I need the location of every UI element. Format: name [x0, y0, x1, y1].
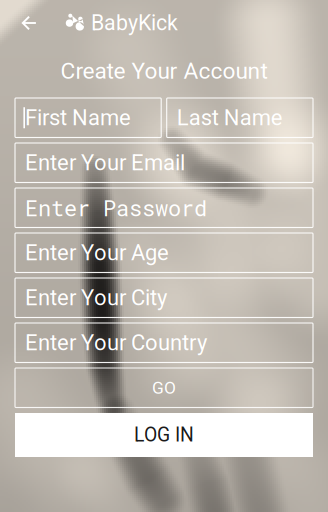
button[interactable]: Enter Your Email	[15, 143, 313, 182]
staticText: Enter Your Email	[25, 150, 185, 176]
button[interactable]: Enter Your City	[15, 278, 313, 317]
button[interactable]: Last Name	[167, 98, 313, 137]
button[interactable]: LOG IN	[15, 413, 313, 457]
staticText: Create Your Account	[60, 58, 267, 84]
staticText: First Name	[25, 105, 131, 131]
staticText: GO	[152, 378, 176, 398]
button[interactable]: Enter Password	[15, 188, 313, 227]
button[interactable]: Back	[14, 7, 44, 39]
button[interactable]: Enter Your Country	[15, 323, 313, 362]
staticText: LOG IN	[134, 424, 194, 446]
button[interactable]: First Name	[15, 98, 161, 137]
staticText: Last Name	[177, 105, 283, 131]
button[interactable]: Enter Your Age	[15, 233, 313, 272]
staticText: Enter Your City	[25, 285, 167, 311]
staticText: BabyKick	[91, 10, 178, 35]
staticText: Enter Password	[25, 193, 207, 222]
staticText: Enter Your Age	[25, 240, 169, 266]
button[interactable]: GO	[15, 368, 313, 407]
staticText: Enter Your Country	[25, 330, 207, 356]
